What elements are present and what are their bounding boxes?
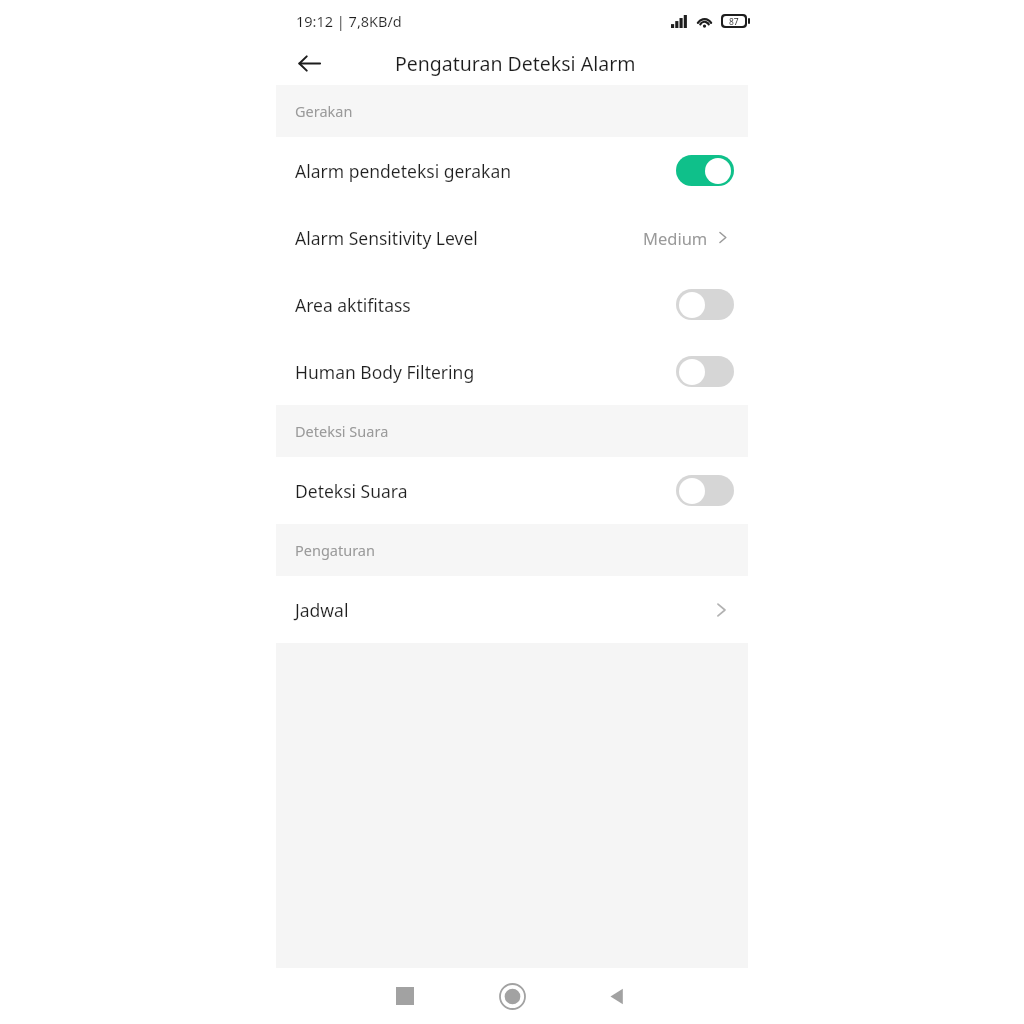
button[interactable]: Back [292,46,326,80]
staticText: Alarm pendeteksi gerakan [295,159,676,183]
button[interactable]: Recents [381,972,429,1020]
button[interactable]: Jadwal [276,576,748,643]
staticText: Pengaturan [295,540,375,560]
button[interactable]: Alarm pendeteksi gerakan [276,137,748,204]
button[interactable]: Back [593,972,641,1020]
staticText: Jadwal [295,598,712,622]
staticText: Gerakan [295,101,353,121]
staticText: 19:12 | 7,8KB/d [296,11,402,31]
button[interactable]: Alarm Sensitivity Level [276,204,748,271]
staticText: 87 [729,16,739,26]
staticText: Pengaturan Deteksi Alarm [395,50,636,77]
button[interactable]: Deteksi Suara [276,457,748,524]
staticText: Medium [643,227,708,249]
button[interactable]: Home [488,972,536,1020]
staticText: Area aktifitass [295,293,676,317]
staticText: Alarm Sensitivity Level [295,226,643,250]
staticText: Human Body Filtering [295,360,676,384]
staticText: Deteksi Suara [295,421,389,441]
button[interactable]: Area aktifitass [276,271,748,338]
button[interactable]: Human Body Filtering [276,338,748,405]
staticText: Deteksi Suara [295,479,676,503]
